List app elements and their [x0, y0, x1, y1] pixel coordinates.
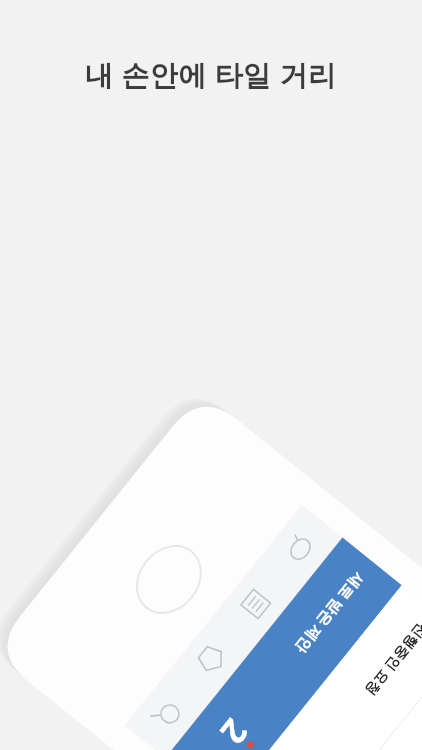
button[interactable]: 타일 거리 앱 화면	[0, 0, 422, 750]
